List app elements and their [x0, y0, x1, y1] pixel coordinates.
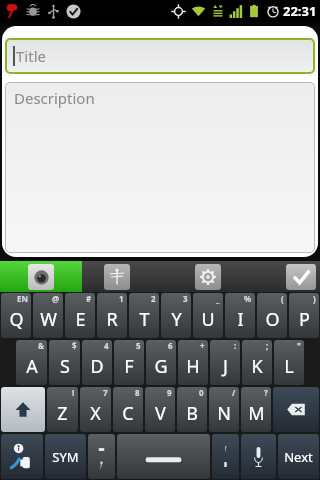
button[interactable]: Shift [1, 387, 45, 432]
staticText: # [86, 293, 92, 304]
staticText: 1 [119, 293, 124, 304]
staticText: R [106, 307, 118, 332]
button[interactable]: Description [5, 82, 315, 253]
staticText: 0 [199, 387, 204, 398]
staticText: L [284, 354, 294, 379]
staticText: P [299, 307, 310, 332]
staticText: EN [17, 293, 28, 304]
button[interactable]: Next [278, 434, 319, 479]
staticText: E [75, 307, 86, 332]
button[interactable]: 9 [145, 387, 175, 432]
button[interactable]: 5 [114, 340, 144, 385]
button[interactable]: $ [49, 340, 80, 385]
button[interactable]: + [178, 340, 208, 385]
button[interactable]: ? [241, 387, 271, 432]
staticText: ; [266, 340, 269, 351]
button[interactable]: : [210, 340, 240, 385]
staticText: F [124, 354, 134, 379]
staticText: O [265, 307, 280, 332]
staticText: S [60, 354, 70, 379]
staticText: Next [284, 448, 313, 466]
button[interactable]: Input method [1, 434, 43, 479]
button[interactable]: SYM [45, 434, 86, 479]
button[interactable]: 1 [97, 293, 127, 338]
button[interactable]: / [209, 387, 239, 432]
staticText: 8 [135, 387, 140, 398]
button[interactable]: @ [33, 293, 63, 338]
staticText: 9 [167, 387, 172, 398]
staticText: ) [313, 293, 316, 304]
staticText: H [186, 354, 200, 379]
button[interactable]: " [274, 340, 304, 385]
button[interactable]: ( [257, 293, 287, 338]
button[interactable]: _ [193, 293, 223, 338]
button[interactable]: Settings [195, 264, 221, 290]
staticText: & [38, 340, 44, 351]
button[interactable]: Voice input [241, 434, 276, 479]
staticText: M [248, 401, 265, 426]
staticText: W [40, 307, 57, 332]
button[interactable]: ; [242, 340, 272, 385]
button[interactable]: Attach [104, 264, 130, 290]
staticText: K [251, 354, 263, 379]
button[interactable]: Backspace [273, 387, 319, 432]
button[interactable]: Title [5, 38, 315, 74]
staticText: 2 [151, 293, 156, 304]
button[interactable]: 4 [82, 340, 112, 385]
button[interactable]: 3 [161, 293, 191, 338]
staticText: B [186, 401, 198, 426]
staticText: 22:31 [283, 2, 317, 20]
button[interactable]: Camera [0, 261, 82, 292]
staticText: I [237, 307, 244, 332]
staticText: U [201, 307, 215, 332]
staticText: % [244, 293, 252, 304]
staticText: V [155, 401, 166, 426]
button[interactable]: 8 [113, 387, 143, 432]
button[interactable]: ! [47, 387, 78, 432]
button[interactable]: & [16, 340, 47, 385]
staticText: ! [72, 387, 75, 398]
staticText: C [122, 401, 134, 426]
button[interactable]: 0 [177, 387, 207, 432]
staticText: 3 [183, 293, 188, 304]
staticText: G [154, 354, 168, 379]
staticText: D [90, 354, 104, 379]
staticText: Title [16, 46, 46, 66]
button[interactable]: Comma [88, 434, 115, 479]
staticText: + [200, 340, 205, 351]
staticText: Q [9, 307, 24, 332]
staticText: Y [171, 307, 182, 332]
button[interactable]: EN [1, 293, 31, 338]
staticText: 4 [104, 340, 109, 351]
button[interactable]: 6 [146, 340, 176, 385]
staticText: A [26, 354, 38, 379]
staticText: N [217, 401, 231, 426]
staticText: : [234, 340, 237, 351]
button[interactable]: # [65, 293, 95, 338]
staticText: ( [281, 293, 284, 304]
button[interactable]: Done [286, 264, 316, 290]
staticText: @ [52, 293, 60, 304]
staticText: Z [57, 401, 68, 426]
staticText: " [297, 340, 301, 351]
button[interactable]: Period [212, 434, 239, 479]
staticText: _ [216, 293, 220, 304]
staticText: 6 [168, 340, 173, 351]
staticText: J [223, 354, 228, 379]
staticText: ? [264, 387, 268, 398]
staticText: X [90, 401, 101, 426]
staticText: $ [72, 340, 77, 351]
staticText: SYM [52, 448, 79, 466]
button[interactable]: % [225, 293, 255, 338]
button[interactable]: 7 [80, 387, 111, 432]
staticText: / [232, 387, 236, 398]
staticText: Description [14, 88, 95, 108]
button[interactable]: Space [117, 434, 210, 479]
button[interactable]: ) [289, 293, 319, 338]
button[interactable]: 2 [129, 293, 159, 338]
staticText: 7 [103, 387, 108, 398]
staticText: T [139, 307, 150, 332]
staticText: 5 [136, 340, 141, 351]
